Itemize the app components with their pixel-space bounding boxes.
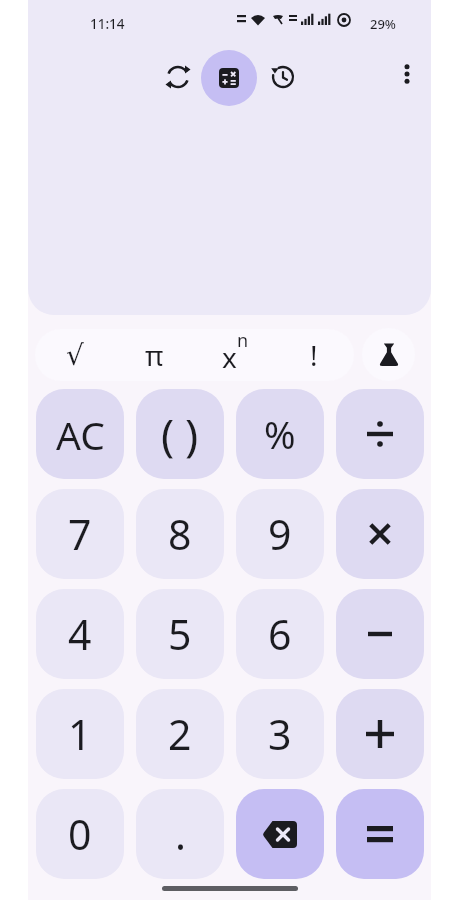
button[interactable]: AC (36, 389, 124, 479)
button[interactable]: 0 (36, 789, 124, 879)
button[interactable]: 3 (236, 689, 324, 779)
button[interactable] (336, 489, 424, 579)
staticText: ! (310, 336, 318, 374)
staticText: AC (56, 408, 105, 461)
button[interactable]: 4 (36, 589, 124, 679)
staticText: 1 (68, 706, 92, 762)
staticText: 5 (168, 606, 192, 662)
staticText: 29% (370, 15, 396, 33)
staticText: 9 (268, 506, 292, 562)
button[interactable]: 5 (136, 589, 224, 679)
staticText: 8 (168, 506, 192, 562)
button[interactable]: 8 (136, 489, 224, 579)
staticText: n (237, 329, 249, 353)
button[interactable]: π (114, 329, 194, 381)
staticText: 7 (68, 506, 92, 562)
button[interactable] (336, 389, 424, 479)
staticText: √ (66, 339, 84, 372)
button[interactable]: 7 (36, 489, 124, 579)
button[interactable] (336, 689, 424, 779)
button[interactable] (236, 789, 324, 879)
staticText: 4 (68, 606, 92, 662)
button[interactable]: % (236, 389, 324, 479)
staticText: 3 (268, 706, 292, 762)
staticText: % (264, 408, 296, 460)
button[interactable] (160, 59, 196, 95)
button[interactable]: x (194, 329, 274, 381)
button[interactable] (336, 789, 424, 879)
staticText: ( (161, 404, 175, 464)
staticText: x (222, 338, 237, 376)
button[interactable] (391, 58, 423, 90)
button[interactable]: 1 (36, 689, 124, 779)
button[interactable] (336, 589, 424, 679)
button[interactable]: √ (35, 329, 114, 381)
button[interactable]: . (136, 789, 224, 879)
staticText: 0 (68, 806, 92, 862)
button[interactable] (201, 50, 257, 106)
button[interactable]: 9 (236, 489, 324, 579)
button[interactable] (362, 328, 415, 381)
button[interactable]: ! (274, 329, 354, 381)
staticText: . (175, 806, 186, 862)
button[interactable]: 2 (136, 689, 224, 779)
staticText: ) (185, 404, 199, 464)
staticText: 11:14 (90, 15, 125, 33)
staticText: 6 (268, 606, 292, 662)
button[interactable]: 6 (236, 589, 324, 679)
button[interactable]: ( (136, 389, 224, 479)
button[interactable] (265, 59, 301, 95)
staticText: 2 (168, 706, 192, 762)
staticText: π (145, 336, 164, 374)
